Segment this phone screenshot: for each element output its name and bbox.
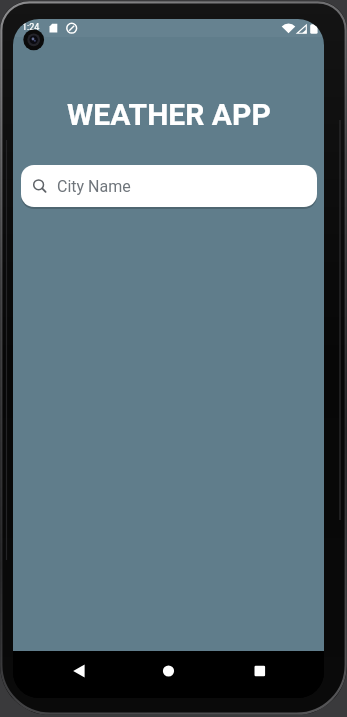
button[interactable] (135, 651, 202, 698)
button[interactable] (202, 651, 290, 698)
button[interactable]: City Name (21, 165, 317, 207)
button[interactable] (47, 651, 135, 698)
staticText: 1:24 (22, 22, 40, 33)
staticText: City Name (57, 177, 131, 196)
staticText: WEATHER APP (67, 97, 271, 132)
